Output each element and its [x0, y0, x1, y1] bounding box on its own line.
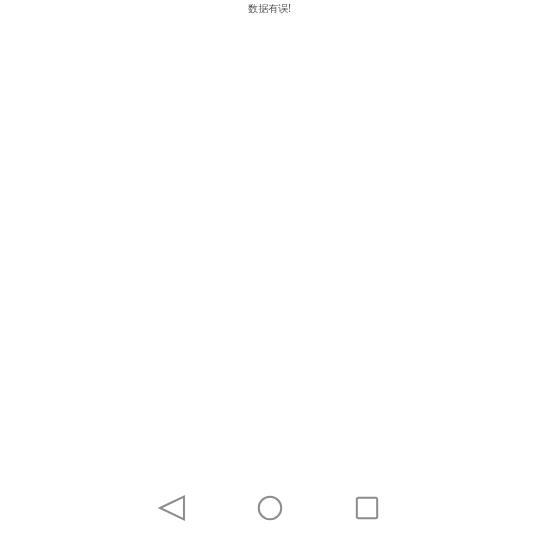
button[interactable]: Home [212, 467, 327, 539]
staticText: 数据有误! [248, 1, 291, 15]
button[interactable]: Recent apps [327, 467, 407, 539]
button[interactable]: Back [132, 467, 212, 539]
